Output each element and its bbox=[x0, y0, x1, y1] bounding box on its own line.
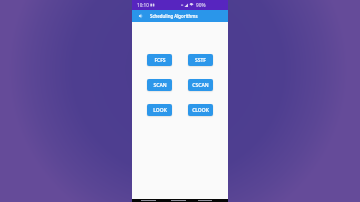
staticText: 10:10 bbox=[137, 2, 149, 8]
button[interactable]: SCAN bbox=[147, 79, 172, 91]
staticText: Scheduling Algorithms bbox=[150, 13, 198, 19]
button[interactable]: FCFS bbox=[147, 54, 172, 66]
staticText: CSCAN bbox=[192, 82, 209, 89]
staticText: SSTF bbox=[195, 57, 206, 64]
staticText: CLOOK bbox=[192, 107, 209, 114]
staticText: 90% bbox=[196, 2, 206, 9]
button[interactable]: CLOOK bbox=[188, 104, 213, 116]
button[interactable]: LOOK bbox=[147, 104, 172, 116]
button[interactable]: Navigate up bbox=[136, 12, 144, 20]
staticText: LOOK bbox=[153, 107, 167, 114]
staticText: FCFS bbox=[154, 57, 166, 64]
button[interactable]: SSTF bbox=[188, 54, 213, 66]
staticText: SCAN bbox=[153, 82, 167, 89]
button[interactable]: CSCAN bbox=[188, 79, 213, 91]
